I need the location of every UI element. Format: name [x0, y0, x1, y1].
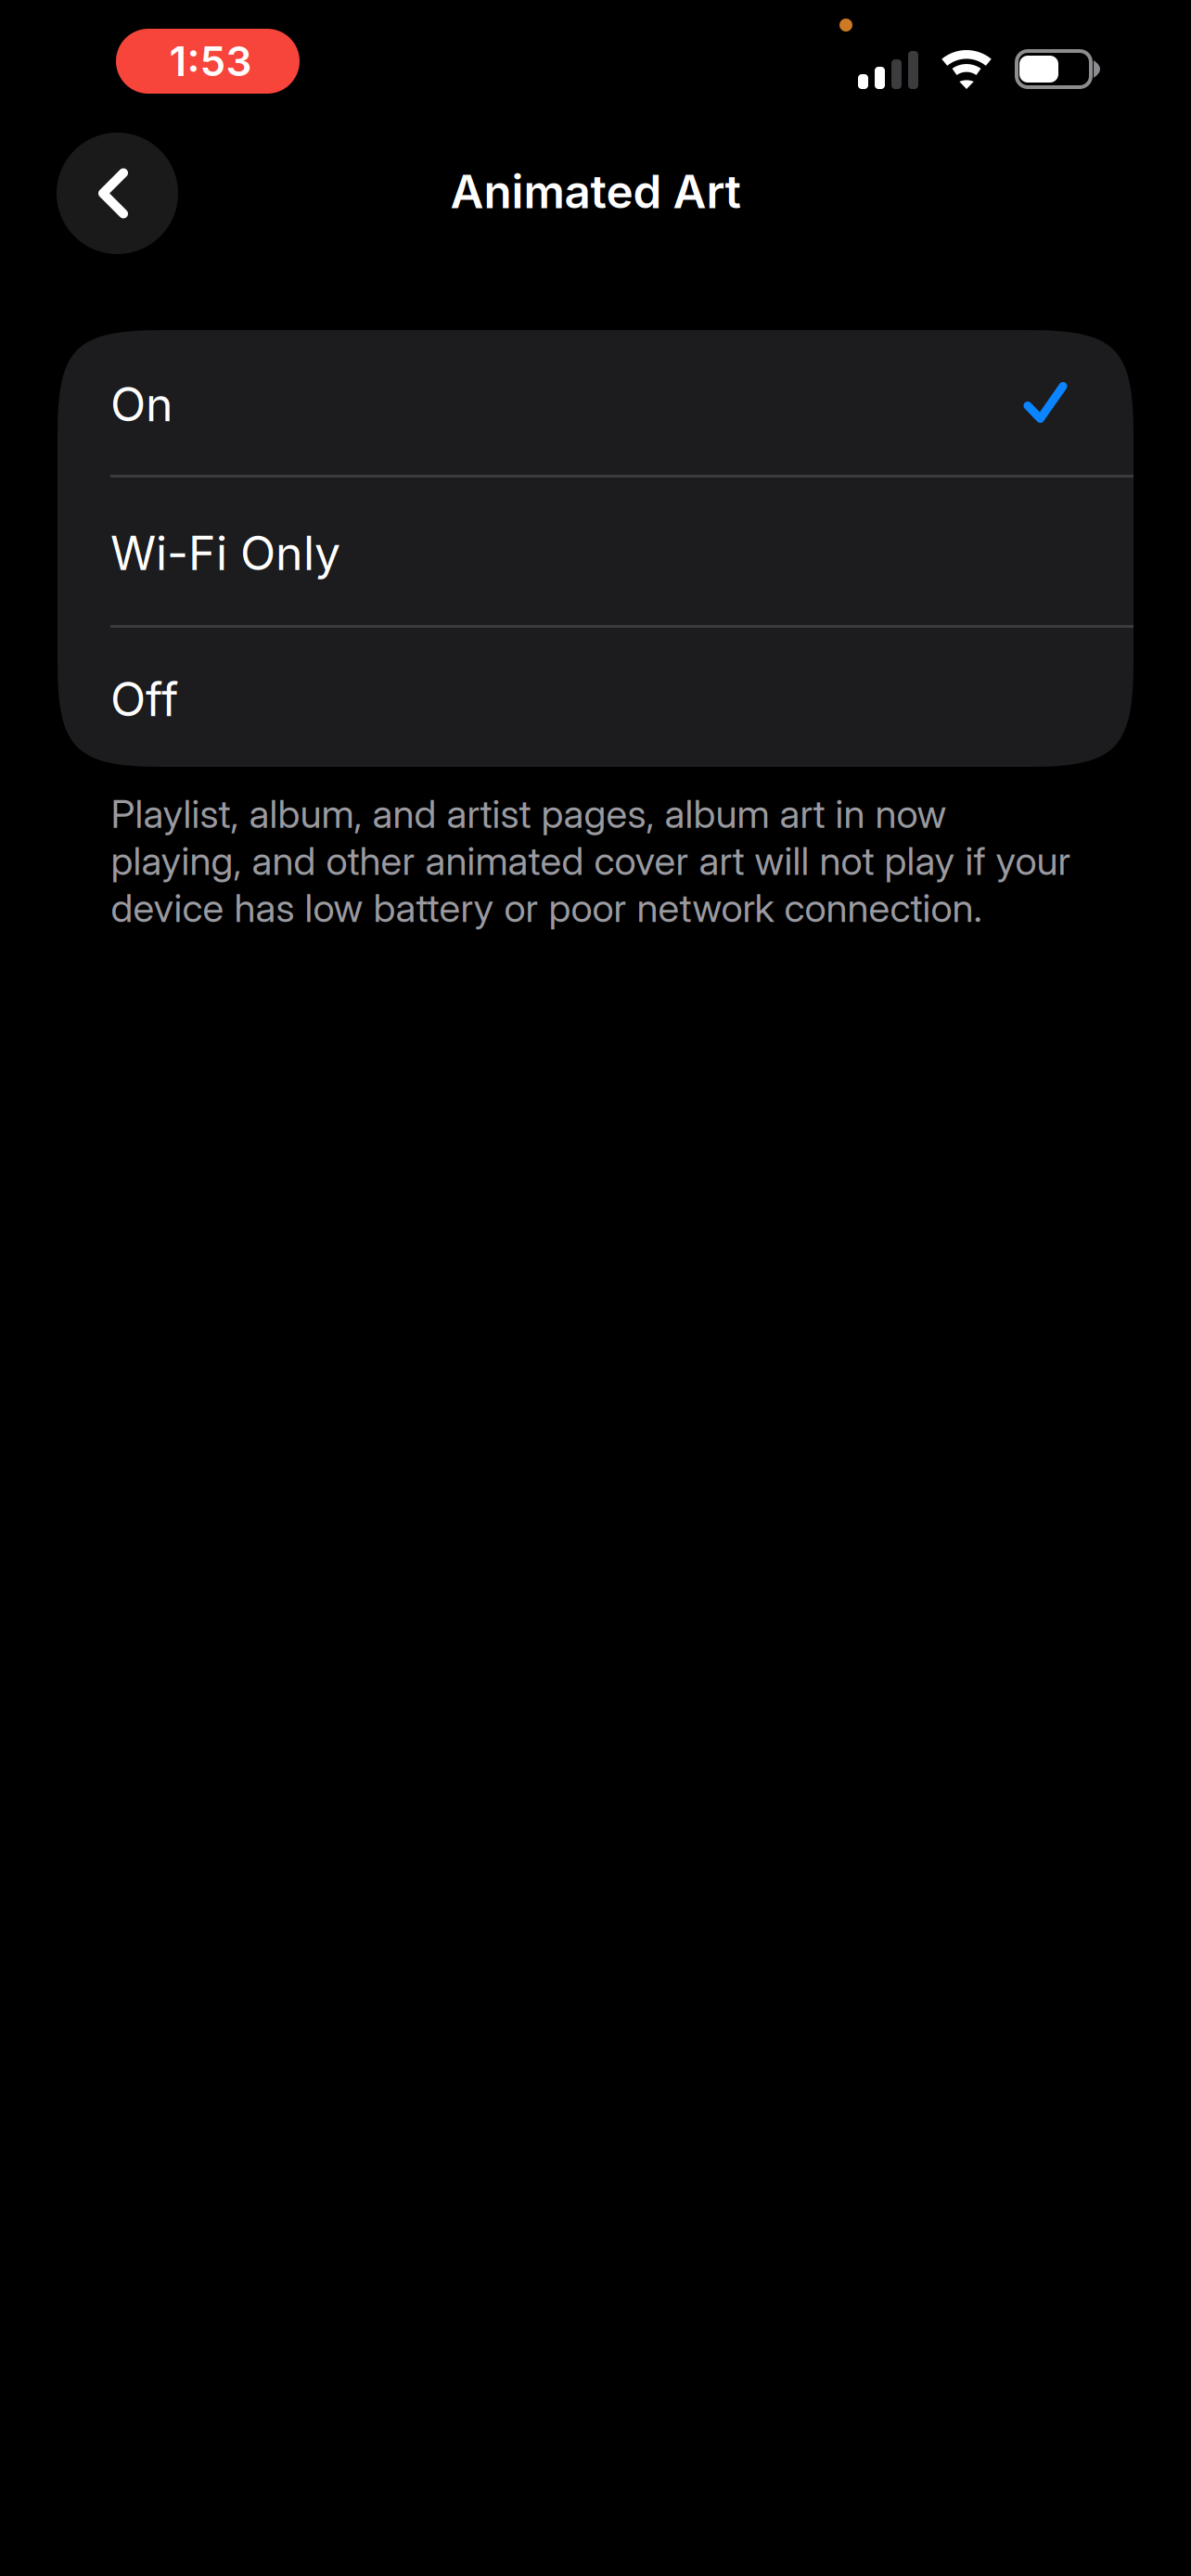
staticText: Playlist, album, and artist pages, album…	[111, 790, 1071, 931]
button[interactable]: Back	[57, 133, 178, 254]
staticText: Wi-Fi Only	[110, 525, 340, 581]
staticText: On	[110, 376, 173, 432]
button[interactable]: On	[58, 330, 1133, 475]
staticText: Animated Art	[450, 164, 741, 219]
staticText: Off	[110, 671, 179, 727]
button[interactable]: Wi-Fi Only	[58, 478, 1133, 625]
staticText: 1:53	[169, 37, 252, 86]
button[interactable]: Off	[58, 628, 1133, 767]
